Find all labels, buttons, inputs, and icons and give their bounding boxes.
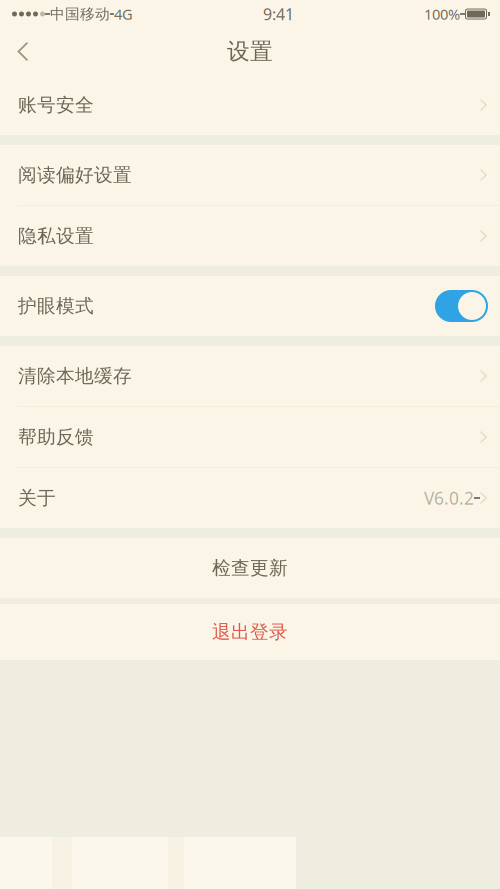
staticText: 护眼模式 — [18, 294, 94, 317]
staticText: 100% — [424, 4, 460, 24]
staticText: 退出登录 — [212, 620, 288, 643]
button[interactable]: 阅读偏好设置 — [0, 145, 500, 205]
button[interactable]: 账号安全 — [0, 75, 500, 135]
staticText: 清除本地缓存 — [18, 364, 132, 387]
staticText: 9:41 — [263, 3, 294, 25]
button[interactable]: 隐私设置 — [0, 206, 500, 266]
staticText: 阅读偏好设置 — [18, 163, 132, 186]
staticText: 关于 — [18, 486, 56, 509]
staticText: 中国移动 — [50, 5, 110, 23]
staticText: 4G — [114, 4, 133, 24]
button[interactable]: 清除本地缓存 — [0, 346, 500, 406]
staticText: 账号安全 — [18, 93, 94, 116]
staticText: 隐私设置 — [18, 224, 94, 247]
button[interactable]: 关于 — [0, 468, 500, 528]
staticText: 设置 — [227, 38, 273, 65]
button[interactable]: 退出登录 — [0, 604, 500, 660]
button[interactable]: 帮助反馈 — [0, 407, 500, 467]
staticText: 帮助反馈 — [18, 425, 94, 448]
button[interactable]: 护眼模式 — [0, 276, 500, 336]
button[interactable]: Back — [0, 28, 47, 75]
button[interactable]: 检查更新 — [0, 538, 500, 598]
staticText: 检查更新 — [212, 556, 288, 579]
staticText: V6.0.2 — [424, 486, 474, 509]
